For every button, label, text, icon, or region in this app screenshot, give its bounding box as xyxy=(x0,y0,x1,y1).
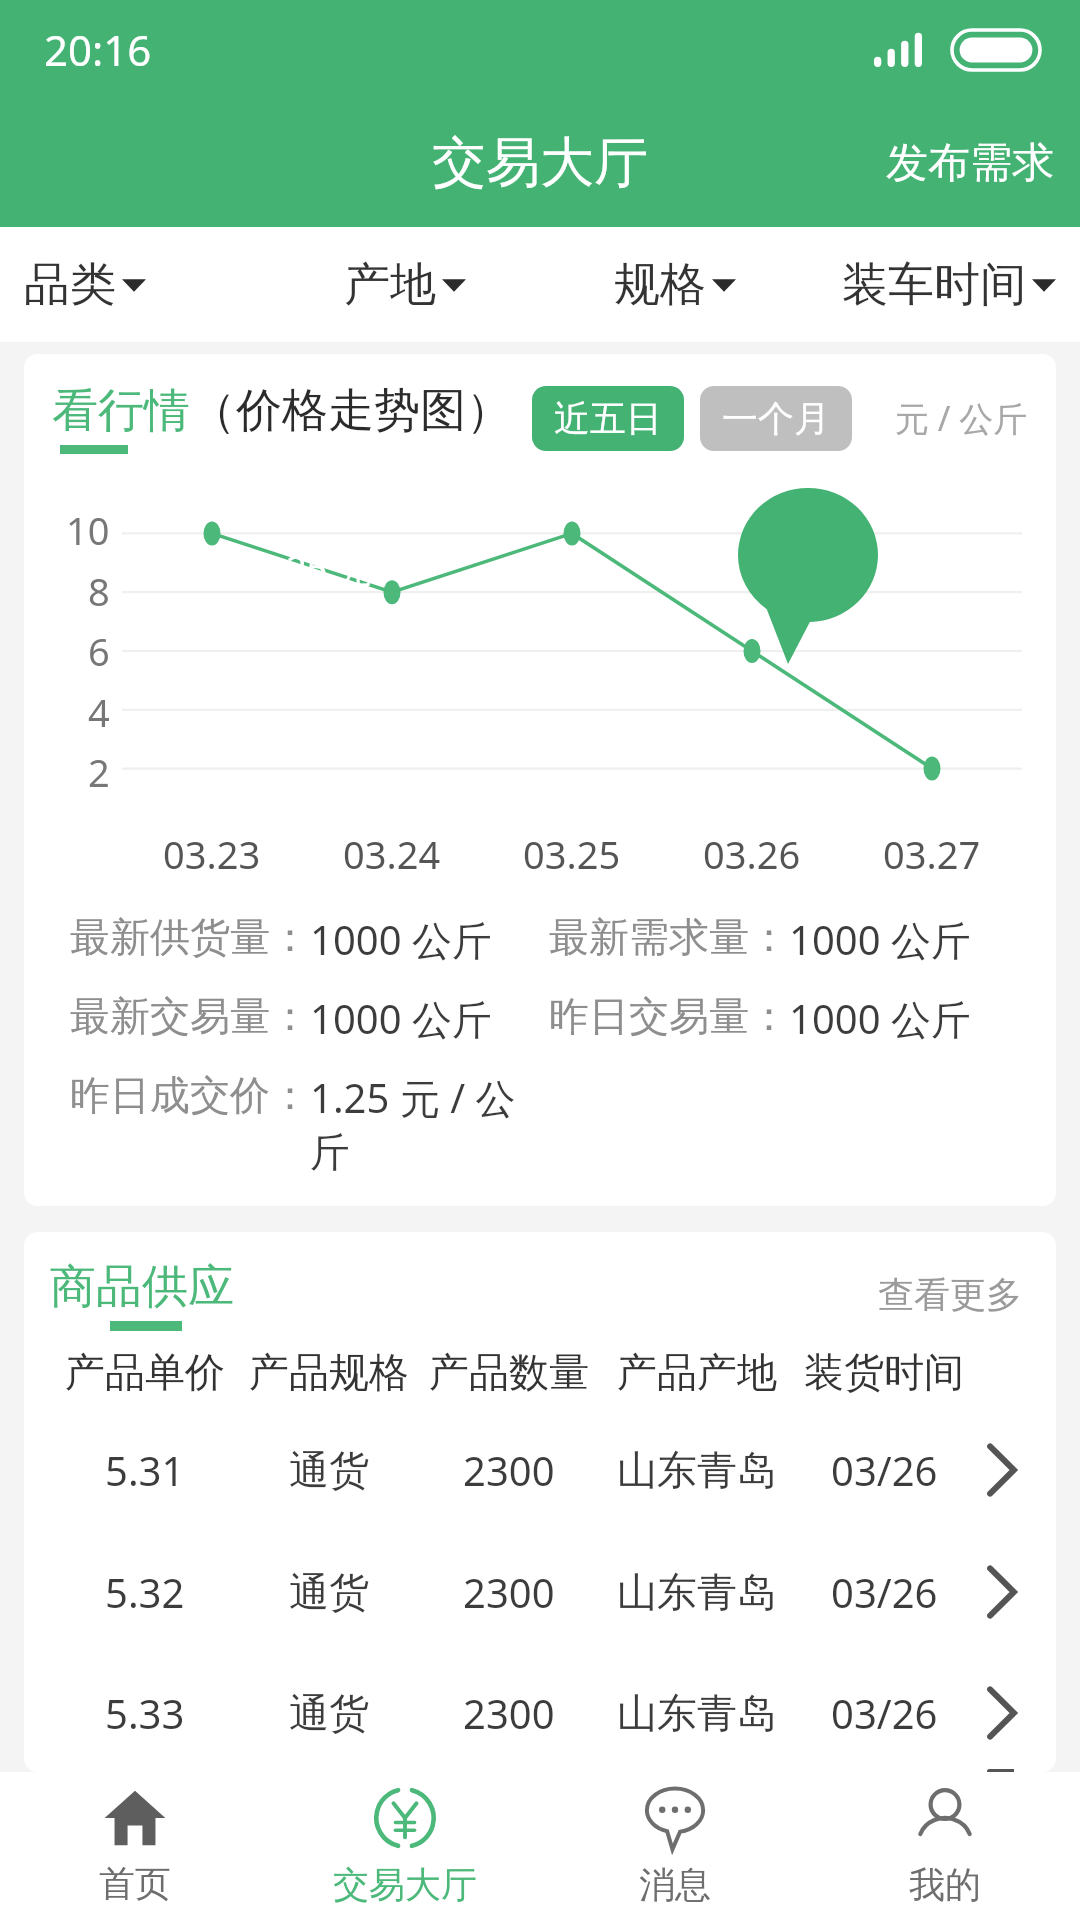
staticText: 发布需求 xyxy=(886,137,1054,190)
other: 我的 xyxy=(913,1786,977,1850)
staticText: 产品数量 xyxy=(429,1347,589,1397)
other: 首页 xyxy=(104,1787,166,1849)
button[interactable]: 品类 xyxy=(0,227,270,342)
staticText: 山东青岛 xyxy=(617,1445,777,1495)
staticText: 商品供应 xyxy=(50,1258,234,1316)
staticText: 通货 xyxy=(289,1567,369,1617)
staticText: 2300 xyxy=(463,1565,555,1619)
button[interactable]: 我的 xyxy=(810,1772,1080,1920)
staticText: 1.25 元 / 公斤 xyxy=(310,1070,549,1178)
staticText: 1000 公斤 xyxy=(789,991,971,1046)
staticText: 首页 xyxy=(99,1861,171,1906)
staticText: 03.23 xyxy=(163,828,261,880)
staticText: 最新供货量： xyxy=(70,912,310,962)
button[interactable]: 交易大厅 xyxy=(270,1772,540,1920)
staticText: 品类 xyxy=(24,256,116,314)
staticText: 6 xyxy=(88,625,110,677)
staticText: 1000 公斤 xyxy=(310,991,492,1046)
staticText: 近五日 xyxy=(554,396,662,441)
staticText: 交易大厅 xyxy=(432,129,648,197)
staticText: 03.24 xyxy=(343,828,441,880)
staticText: 规格 xyxy=(614,256,706,314)
button[interactable]: 装车时间 xyxy=(810,227,1080,342)
button[interactable]: 5.31 xyxy=(24,1409,1056,1531)
staticText: 03/26 xyxy=(831,1443,938,1497)
staticText: 昨日交易量： xyxy=(549,991,789,1041)
staticText: 产地 xyxy=(344,256,436,314)
staticText: 消息 xyxy=(639,1862,711,1907)
staticText: 1000 公斤 xyxy=(789,912,971,967)
staticText: 装车时间 xyxy=(842,256,1026,314)
button[interactable]: 首页 xyxy=(0,1772,270,1920)
staticText: （价格走势图） xyxy=(190,382,512,440)
button[interactable]: 规格 xyxy=(540,227,810,342)
other: 消息 xyxy=(643,1786,707,1850)
staticText: 山东青岛 xyxy=(617,1567,777,1617)
staticText: 我的 xyxy=(909,1862,981,1907)
staticText: 通货 xyxy=(289,1688,369,1738)
staticText: 5.31 xyxy=(105,1443,185,1497)
staticText: 03/26 xyxy=(831,1565,938,1619)
staticText: 03.25 xyxy=(523,828,621,880)
staticText: 交易大厅 xyxy=(333,1862,477,1907)
staticText: 03/26 xyxy=(831,1686,938,1740)
button[interactable]: 发布需求 xyxy=(860,121,1080,206)
button[interactable]: 查看更多 xyxy=(870,1264,1030,1325)
button[interactable]: 消息 xyxy=(540,1772,810,1920)
staticText: 看行情 xyxy=(52,382,190,440)
staticText: 产品产地 xyxy=(617,1347,777,1397)
button[interactable]: 5.32 xyxy=(24,1531,1056,1653)
staticText: 最新需求量： xyxy=(549,912,789,962)
staticText: 03.27 xyxy=(883,828,981,880)
staticText: 查看更多 xyxy=(878,1272,1022,1317)
button[interactable]: 5.33 xyxy=(24,1653,1056,1772)
staticText: 装货时间 xyxy=(804,1347,964,1397)
staticText: 1000 公斤 xyxy=(310,912,492,967)
staticText: 山东青岛 xyxy=(617,1688,777,1738)
staticText: 产品单价 xyxy=(65,1347,225,1397)
staticText: 5.32 xyxy=(105,1565,185,1619)
staticText: 最新交易量： xyxy=(70,991,310,1041)
staticText: 2300 xyxy=(463,1443,555,1497)
staticText: 1.25 元 xyxy=(256,544,373,593)
staticText: 5.33 xyxy=(105,1686,185,1740)
staticText: 一个月 xyxy=(722,396,830,441)
staticText: 产品规格 xyxy=(249,1347,409,1397)
staticText: 2300 xyxy=(463,1686,555,1740)
staticText: 2 xyxy=(88,746,110,798)
button[interactable]: 产地 xyxy=(270,227,540,342)
staticText: 元 / 公斤 xyxy=(895,395,1028,441)
staticText: 通货 xyxy=(289,1445,369,1495)
staticText: 10 xyxy=(66,504,110,556)
staticText: 20:16 xyxy=(44,21,152,78)
button[interactable]: 近五日 xyxy=(532,386,684,451)
staticText: 8 xyxy=(88,565,110,617)
button[interactable]: 一个月 xyxy=(700,386,852,451)
other: 交易大厅 xyxy=(373,1786,437,1850)
staticText: 昨日成交价： xyxy=(70,1070,310,1120)
staticText: 4 xyxy=(88,686,110,738)
staticText: 03.26 xyxy=(703,828,801,880)
